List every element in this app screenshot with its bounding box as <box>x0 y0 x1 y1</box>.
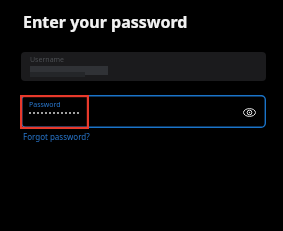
button[interactable]: Forgot password? <box>20 130 93 143</box>
staticText: Enter your password <box>23 11 188 33</box>
button[interactable]: Password <box>21 95 266 128</box>
staticText: Username <box>30 55 65 65</box>
staticText: Password <box>29 100 61 110</box>
staticText: Forgot password? <box>23 131 90 142</box>
button[interactable]: Username <box>21 52 266 81</box>
button[interactable]: Show password <box>241 104 257 120</box>
